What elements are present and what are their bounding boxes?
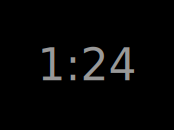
staticText: 1:24 <box>37 39 136 91</box>
